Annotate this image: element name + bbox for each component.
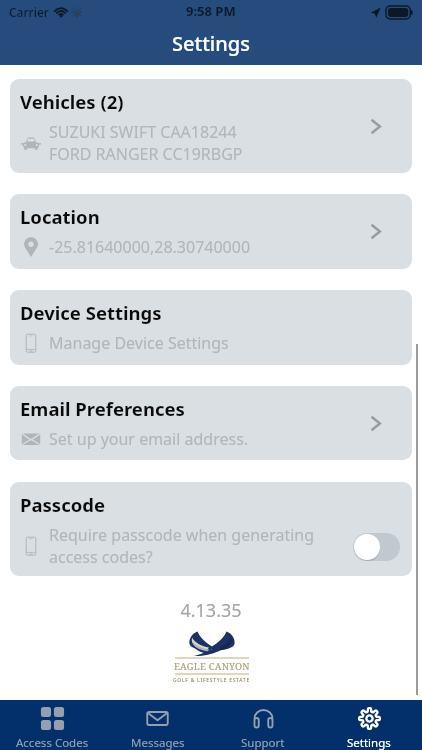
button[interactable]: Device Settings bbox=[10, 290, 412, 365]
staticText: Email Preferences bbox=[20, 396, 185, 421]
staticText: FORD RANGER CC19RBGP bbox=[49, 143, 243, 165]
staticText: Passcode bbox=[20, 492, 105, 517]
staticText: Manage Device Settings bbox=[49, 332, 229, 354]
button[interactable]: Settings bbox=[316, 700, 422, 750]
staticText: SUZUKI SWIFT CAA18244 bbox=[49, 121, 237, 143]
other: Email Preferences bbox=[365, 413, 386, 434]
staticText: Device Settings bbox=[20, 300, 162, 325]
button[interactable]: Access Codes bbox=[0, 700, 105, 750]
button[interactable]: Vehicles (2) bbox=[10, 79, 412, 173]
staticText: 4.13.35 bbox=[0, 598, 422, 623]
staticText: Settings bbox=[347, 735, 391, 750]
other: Location bbox=[365, 221, 386, 242]
staticText: Location bbox=[20, 204, 100, 229]
button[interactable]: Email Preferences bbox=[10, 386, 412, 460]
button[interactable]: Support bbox=[210, 700, 316, 750]
button[interactable]: Passcode toggle bbox=[353, 533, 400, 561]
staticText: -25.81640000,28.30740000 bbox=[49, 236, 251, 258]
staticText: EAGLE CANYON bbox=[174, 660, 250, 673]
staticText: Settings bbox=[172, 30, 250, 57]
staticText: access codes? bbox=[49, 546, 153, 568]
button[interactable]: Passcode bbox=[10, 482, 412, 576]
staticText: 9:58 PM bbox=[186, 2, 236, 20]
staticText: Vehicles (2) bbox=[20, 89, 124, 114]
staticText: Support bbox=[241, 735, 285, 750]
staticText: Require passcode when generating bbox=[49, 524, 315, 546]
staticText: Carrier bbox=[9, 4, 49, 20]
other: Vehicles (2) bbox=[365, 116, 386, 137]
staticText: Messages bbox=[131, 735, 185, 750]
staticText: Access Codes bbox=[16, 735, 89, 750]
staticText: GOLF & LIFESTYLE ESTATE bbox=[173, 677, 250, 684]
button[interactable]: Messages bbox=[105, 700, 210, 750]
staticText: Set up your email address. bbox=[49, 428, 249, 450]
button[interactable]: Location bbox=[10, 194, 412, 269]
